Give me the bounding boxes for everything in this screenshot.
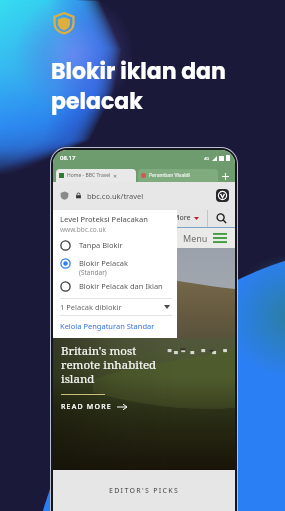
button[interactable]: Blokir Pelacak dan Iklan xyxy=(60,281,172,292)
staticText: ✕ xyxy=(113,173,118,179)
staticText: Tanpa Blokir xyxy=(79,240,123,250)
button[interactable]: Tanpa Blokir xyxy=(60,240,172,251)
staticText: More xyxy=(173,213,191,223)
button[interactable]: Kelola Pengaturan Standar xyxy=(60,321,155,331)
staticText: 4G xyxy=(204,156,210,161)
staticText: Home - BBC Travel xyxy=(67,172,111,179)
button[interactable]: Home - BBC Travel xyxy=(56,169,136,182)
button[interactable]: Vivaldi menu xyxy=(216,189,229,202)
staticText: Blokir Pelacak xyxy=(79,258,129,268)
staticText: READ MORE xyxy=(61,402,112,412)
staticText: bbc.co.uk/travel xyxy=(87,191,144,201)
button[interactable]: More xyxy=(173,213,199,223)
button[interactable]: Search xyxy=(216,213,227,224)
button[interactable]: Peramban Vivaldi xyxy=(138,169,218,182)
button[interactable]: Blokir Pelacak xyxy=(60,258,172,277)
staticText: www.bbc.co.uk xyxy=(60,225,106,234)
staticText: 08.17 xyxy=(60,154,76,162)
button[interactable]: New tab xyxy=(219,170,231,182)
button[interactable]: READ MORE xyxy=(61,402,127,412)
staticText: Menu xyxy=(183,232,208,244)
staticText: Peramban Vivaldi xyxy=(149,172,190,179)
button[interactable]: Menu xyxy=(183,232,227,244)
staticText: EDITOR'S PICKS xyxy=(109,486,180,496)
staticText: Level Proteksi Pelacakan xyxy=(60,214,148,224)
staticText: 1 Pelacak diblokir xyxy=(60,302,122,312)
button[interactable]: 1 Pelacak diblokir xyxy=(60,299,172,315)
staticText: Blokir Pelacak dan Iklan xyxy=(79,281,163,291)
staticText: (Standar) xyxy=(79,268,107,277)
staticText: Britain's most remote inhabited island xyxy=(61,343,157,386)
staticText: Blokir iklan dan pelacak xyxy=(51,56,226,117)
